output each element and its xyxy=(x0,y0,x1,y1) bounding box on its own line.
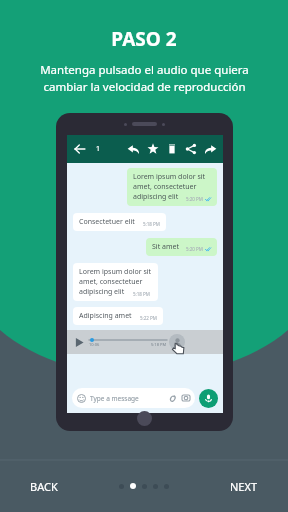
staticText: 5:20 PM xyxy=(186,246,203,252)
button[interactable]: Record voice message xyxy=(199,389,218,408)
button[interactable]: Page 4 xyxy=(153,484,158,489)
button[interactable]: Page 3 xyxy=(142,484,147,489)
button[interactable]: Page 5 xyxy=(164,484,169,489)
button[interactable]: Adipiscing amet xyxy=(73,307,163,325)
staticText: 1 xyxy=(96,144,101,154)
staticText: 5:20 PM xyxy=(186,196,203,202)
staticText: Lorem ipsum dolor sit xyxy=(79,267,152,277)
staticText: Consectetuer elit xyxy=(79,217,135,227)
staticText: PASO 2 xyxy=(111,26,177,52)
staticText: adipiscing elit xyxy=(133,192,179,202)
button[interactable]: Forward xyxy=(204,143,217,156)
staticText: amet, consectetuer xyxy=(133,182,197,192)
button[interactable]: Back xyxy=(73,142,87,156)
button[interactable]: Home xyxy=(137,411,152,426)
staticText: 5:18 PM xyxy=(151,342,167,347)
button[interactable]: Consectetuer elit xyxy=(73,213,166,231)
button[interactable]: Star xyxy=(147,143,159,155)
button[interactable]: Page 1 xyxy=(119,484,124,489)
staticText: BACK xyxy=(30,479,58,494)
button[interactable]: Page 2 xyxy=(130,483,136,489)
button[interactable]: 10:06 xyxy=(67,330,223,354)
button[interactable]: Type a message xyxy=(72,388,195,408)
button[interactable]: Delete xyxy=(166,143,178,155)
staticText: 5:18 PM xyxy=(133,291,150,297)
button[interactable]: Reply xyxy=(127,143,140,156)
staticText: 10:06 xyxy=(89,342,100,347)
staticText: Adipiscing amet xyxy=(79,311,132,321)
button[interactable]: Lorem ipsum dolor sit xyxy=(127,168,217,206)
staticText: Type a message xyxy=(90,394,139,403)
button[interactable]: Sit amet xyxy=(146,238,217,256)
staticText: 5:18 PM xyxy=(143,221,160,227)
staticText: Sit amet xyxy=(152,242,179,252)
staticText: Lorem ipsum dolor sit xyxy=(133,172,206,182)
staticText: NEXT xyxy=(230,479,258,494)
staticText: amet, consectetuer xyxy=(79,277,143,287)
staticText: adipiscing elit xyxy=(79,287,125,297)
button[interactable]: Share xyxy=(185,143,197,155)
button[interactable]: NEXT xyxy=(222,471,266,502)
staticText: Mantenga pulsado el audio que quiera cam… xyxy=(40,62,249,94)
button[interactable]: BACK xyxy=(22,471,66,502)
staticText: 5:22 PM xyxy=(140,315,157,321)
button[interactable]: Lorem ipsum dolor sit xyxy=(73,263,158,301)
